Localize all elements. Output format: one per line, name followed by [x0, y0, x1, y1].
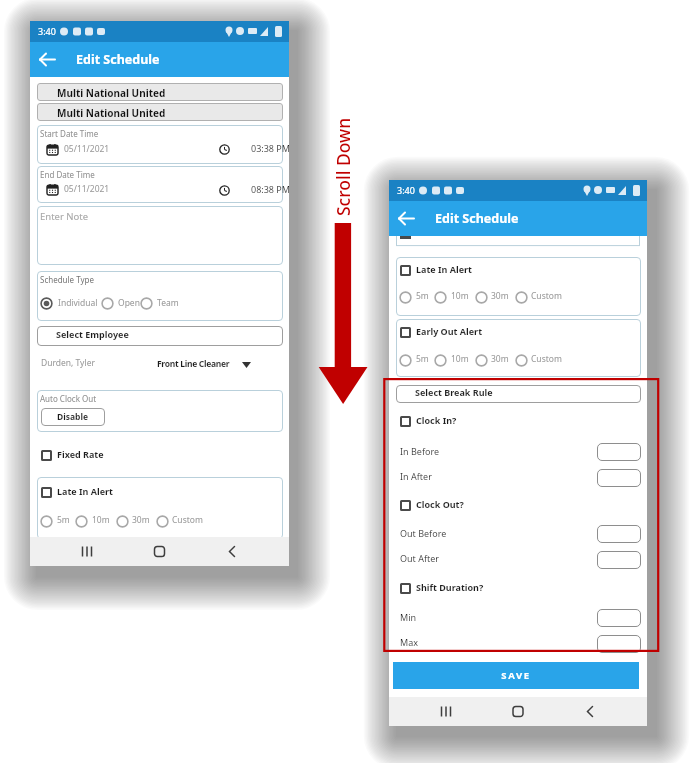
staticText: Front Line Cleaner [157, 358, 230, 370]
button[interactable] [41, 450, 52, 461]
button[interactable] [514, 353, 529, 368]
staticText: End Date Time [40, 169, 95, 180]
staticText: Custom [172, 514, 203, 526]
staticText: Late In Alert [416, 263, 472, 275]
staticText: Schedule Type [40, 274, 95, 285]
staticText: 10m [451, 290, 469, 302]
staticText: 30m [491, 290, 509, 302]
staticText: In After [400, 470, 432, 482]
staticText: Disable [57, 411, 89, 423]
staticText: Out After [400, 552, 440, 564]
staticText: 03:38 PM [251, 142, 289, 154]
staticText: Select Break Rule [415, 386, 493, 398]
staticText: SAVE [501, 669, 531, 682]
button[interactable] [400, 265, 411, 276]
staticText: Min [400, 611, 417, 623]
button[interactable] [37, 83, 283, 101]
staticText: Durden, Tyler [41, 357, 95, 369]
button[interactable] [398, 353, 413, 368]
button[interactable] [74, 514, 89, 529]
staticText: Max [400, 636, 418, 648]
button[interactable] [514, 290, 529, 305]
staticText: 08:38 PM [251, 183, 289, 195]
button[interactable] [400, 583, 411, 594]
staticText: In Before [400, 445, 440, 457]
button[interactable] [474, 353, 489, 368]
button[interactable] [561, 697, 647, 726]
staticText: Multi National United [57, 86, 166, 100]
staticText: Shift Duration? [416, 581, 484, 593]
staticText: 05/11/2021 [64, 143, 110, 155]
staticText: Enter Note [40, 210, 89, 223]
button[interactable] [37, 103, 283, 121]
staticText: 30m [491, 353, 509, 365]
staticText: 05/11/2021 [64, 183, 110, 195]
staticText: 3:40 [38, 25, 56, 37]
button[interactable] [399, 211, 414, 226]
button[interactable] [41, 487, 52, 498]
staticText: 5m [57, 514, 70, 526]
staticText: 5m [416, 353, 429, 365]
staticText: Late In Alert [57, 485, 113, 497]
staticText: Early Out Alert [416, 325, 483, 337]
button[interactable] [597, 443, 641, 461]
button[interactable] [597, 609, 641, 627]
button[interactable]: SAVE [393, 662, 639, 689]
staticText: 10m [92, 514, 110, 526]
staticText: 30m [132, 514, 150, 526]
button[interactable] [117, 537, 203, 566]
staticText: Select Employee [56, 328, 129, 340]
button[interactable] [398, 290, 413, 305]
staticText: Scroll Down [331, 117, 355, 216]
button[interactable]: Disable [41, 408, 105, 426]
staticText: 3:40 [397, 184, 415, 196]
staticText: Custom [531, 353, 562, 365]
staticText: Multi National United [57, 106, 166, 120]
staticText: Open [118, 297, 140, 309]
staticText: 10m [451, 353, 469, 365]
button[interactable] [39, 296, 54, 311]
button[interactable] [30, 537, 117, 566]
button[interactable] [400, 416, 411, 427]
button[interactable] [40, 52, 55, 67]
button[interactable] [597, 551, 641, 569]
button[interactable] [115, 514, 130, 529]
button[interactable] [396, 385, 641, 403]
button[interactable] [433, 353, 448, 368]
button[interactable] [474, 290, 489, 305]
button[interactable] [139, 296, 154, 311]
staticText: 5m [416, 290, 429, 302]
button[interactable] [39, 514, 54, 529]
staticText: Fixed Rate [57, 448, 104, 460]
button[interactable] [400, 500, 411, 511]
button[interactable] [100, 296, 115, 311]
button[interactable] [155, 514, 170, 529]
staticText: Out Before [400, 527, 447, 539]
button[interactable] [389, 697, 475, 726]
staticText: Team [157, 297, 179, 309]
button[interactable] [203, 537, 289, 566]
staticText: Edit Schedule [435, 210, 519, 227]
staticText: Custom [531, 290, 562, 302]
button[interactable] [597, 469, 641, 487]
staticText: Start Date Time [40, 128, 99, 139]
staticText: Clock In? [416, 414, 457, 426]
button[interactable] [400, 327, 411, 338]
button[interactable] [597, 635, 641, 653]
button[interactable] [597, 525, 641, 543]
button[interactable] [37, 326, 283, 346]
button[interactable] [433, 290, 448, 305]
staticText: Clock Out? [416, 498, 464, 510]
staticText: Auto Clock Out [40, 393, 97, 404]
button[interactable] [475, 697, 561, 726]
staticText: Individual [58, 297, 98, 309]
staticText: Edit Schedule [76, 51, 160, 68]
